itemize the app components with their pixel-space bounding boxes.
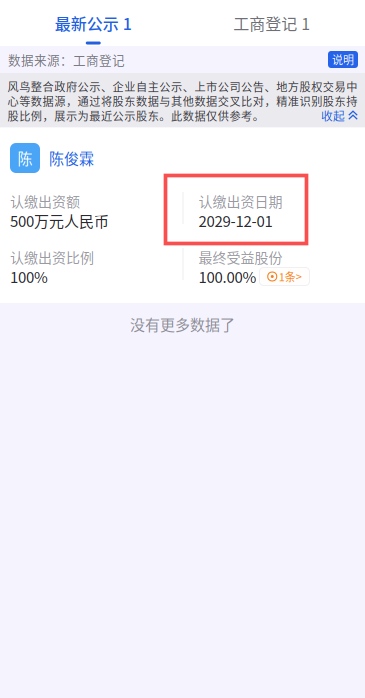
staticText: 没有更多数据了 bbox=[130, 313, 235, 335]
staticText: 认缴出资比例 bbox=[10, 247, 94, 267]
staticText: 最终受益股份 bbox=[198, 247, 282, 267]
staticText: 100% bbox=[10, 266, 48, 287]
button[interactable]: 最新公示 1 bbox=[4, 0, 182, 46]
staticText: 认缴出资额 bbox=[10, 191, 80, 211]
staticText: 2029-12-01 bbox=[198, 210, 272, 231]
staticText: 陈俊霖 bbox=[49, 147, 94, 169]
staticText: 数据来源：工商登记 bbox=[8, 50, 125, 69]
staticText: 1条> bbox=[279, 268, 302, 284]
button[interactable]: 工商登记 1 bbox=[182, 0, 361, 46]
staticText: 工商登记 1 bbox=[233, 11, 310, 35]
staticText: 收起 bbox=[321, 107, 345, 124]
staticText: 股比例，展示为最近公示股东。此数据仅供参考。 bbox=[7, 107, 264, 124]
button[interactable]: 收起 bbox=[321, 107, 358, 124]
button[interactable]: 最终受益股份 1 条 bbox=[259, 267, 309, 285]
staticText: 心等数据源，通过将股东数据与其他数据交叉比对，精准识别股东持 bbox=[7, 93, 357, 109]
button[interactable]: 说明 bbox=[328, 51, 358, 68]
staticText: 陈 bbox=[17, 147, 32, 169]
staticText: 最新公示 1 bbox=[55, 11, 132, 35]
staticText: 认缴出资日期 bbox=[198, 191, 282, 211]
staticText: 100.00% bbox=[198, 266, 256, 287]
staticText: 风鸟整合政府公示、企业自主公示、上市公司公告、地方股权交易中 bbox=[7, 78, 357, 94]
staticText: 说明 bbox=[332, 51, 354, 67]
staticText: 500万元人民币 bbox=[10, 210, 109, 231]
